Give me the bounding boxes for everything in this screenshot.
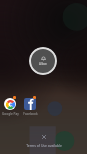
staticText: Terms of Use available [26, 143, 62, 148]
staticText: Allow [39, 62, 47, 66]
staticText: Google Pay [2, 112, 19, 116]
button[interactable]: Facebook [20, 97, 40, 118]
button[interactable]: Close [36, 129, 51, 144]
button[interactable]: Google Pay [0, 97, 20, 118]
button[interactable]: Allow notifications [29, 47, 57, 75]
staticText: Facebook [23, 112, 38, 116]
